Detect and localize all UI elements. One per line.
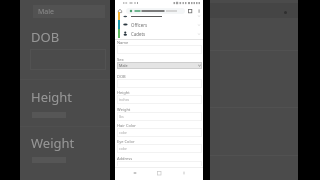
staticText: Height — [117, 90, 130, 95]
button[interactable]: Officers — [115, 20, 203, 29]
staticText: lbs — [119, 114, 124, 119]
staticText: Weight — [31, 134, 75, 152]
button[interactable]: inches — [117, 95, 202, 104]
staticText: Weight — [117, 107, 131, 112]
button[interactable]: Back — [130, 168, 140, 178]
button[interactable]: color — [117, 144, 202, 153]
staticText: Height — [31, 88, 73, 106]
button[interactable]: Tabs — [186, 7, 194, 15]
button[interactable]: lbs — [117, 112, 202, 121]
button[interactable] — [117, 161, 202, 170]
staticText: Sex — [117, 57, 124, 63]
staticText: Male — [38, 7, 55, 17]
button[interactable]: Male — [117, 62, 202, 69]
staticText: Officers — [131, 22, 148, 28]
button[interactable]: Recents — [179, 168, 189, 178]
staticText: Male — [119, 63, 128, 68]
button[interactable] — [115, 12, 203, 20]
staticText: DOB — [31, 28, 60, 46]
staticText: color — [119, 146, 128, 151]
button[interactable]: Home — [154, 168, 164, 178]
button[interactable]: Cadets — [115, 29, 203, 38]
staticText: Address — [117, 156, 133, 161]
button[interactable]: Home — [116, 7, 124, 15]
staticText: Cadets — [131, 31, 146, 37]
button[interactable]: color — [117, 128, 202, 137]
button[interactable] — [126, 8, 185, 14]
staticText: Name — [117, 40, 129, 45]
staticText: color — [119, 130, 128, 135]
button[interactable] — [117, 45, 202, 54]
button[interactable]: Male — [33, 5, 105, 18]
staticText: Eye Color — [117, 139, 135, 144]
staticText: DOB — [117, 74, 126, 79]
staticText: inches — [119, 97, 130, 102]
staticText: Hair Color — [117, 123, 136, 128]
button[interactable]: More options — [195, 7, 203, 15]
button[interactable] — [117, 79, 202, 88]
